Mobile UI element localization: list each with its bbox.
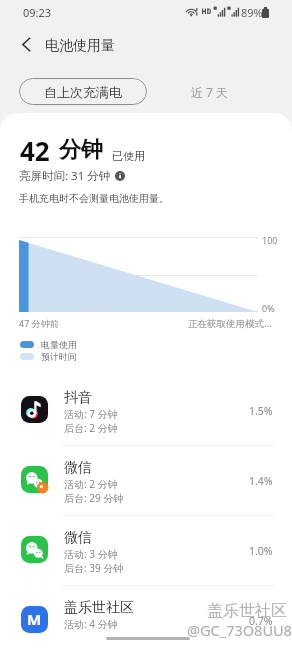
staticText: 预计时间: [41, 351, 77, 362]
staticText: 微信: [64, 459, 92, 477]
staticText: 电池使用量: [45, 37, 115, 55]
staticText: 100: [262, 234, 278, 246]
staticText: 分钟: [59, 136, 103, 164]
staticText: 1.4%: [249, 474, 273, 488]
staticText: 09:23: [23, 5, 52, 20]
staticText: M: [27, 609, 42, 629]
staticText: 活动: 4 分钟: [64, 617, 118, 631]
staticText: 亮屏时间: 31 分钟: [19, 168, 111, 184]
staticText: 盖乐世社区: [207, 601, 287, 621]
staticText: 0.7%: [249, 614, 273, 628]
button[interactable]: Back: [14, 32, 39, 57]
staticText: 89%: [241, 5, 263, 20]
staticText: 自上次充满电: [44, 84, 122, 100]
button[interactable]: 自上次充满电: [19, 78, 147, 105]
staticText: 1.5%: [249, 404, 273, 418]
staticText: 后台: 29 分钟: [64, 491, 124, 505]
staticText: 抖音: [64, 389, 92, 407]
staticText: 42: [20, 133, 50, 168]
staticText: 近 7 天: [191, 84, 229, 100]
button[interactable]: M: [0, 586, 292, 650]
staticText: 电量使用: [41, 339, 77, 350]
staticText: 47 分钟前: [19, 317, 59, 329]
staticText: 后台: 39 分钟: [64, 561, 124, 575]
button[interactable]: 微信: [0, 516, 292, 586]
staticText: 活动: 3 分钟: [64, 547, 118, 561]
staticText: 已使用: [112, 149, 145, 163]
staticText: 微信: [64, 529, 92, 547]
button[interactable]: 抖音: [0, 376, 292, 446]
staticText: @GC_73O8UU8: [187, 620, 292, 640]
staticText: 正在获取使用模式...: [188, 317, 272, 330]
staticText: 活动: 7 分钟: [64, 407, 118, 421]
button[interactable]: 近 7 天: [163, 78, 257, 105]
staticText: 手机充电时不会测量电池使用量。: [19, 192, 169, 205]
button[interactable]: 微信: [0, 446, 292, 516]
staticText: 0%: [262, 302, 275, 314]
staticText: 盖乐世社区: [64, 599, 134, 617]
staticText: 后台: 2 分钟: [64, 421, 118, 435]
staticText: 1.0%: [249, 544, 273, 558]
staticText: 活动: 2 分钟: [64, 477, 118, 491]
